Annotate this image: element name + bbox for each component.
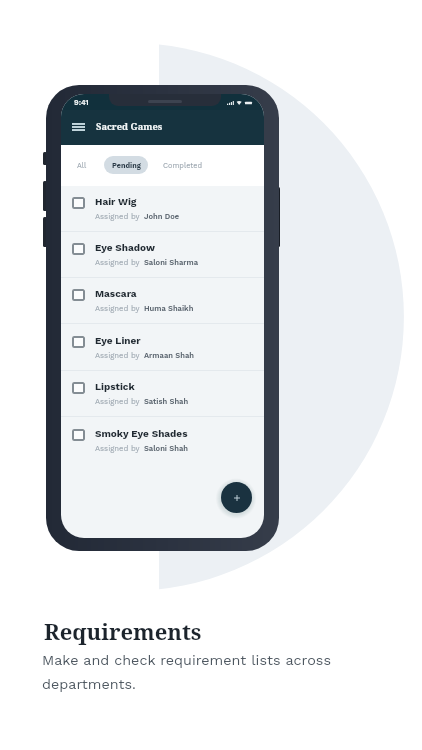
staticText: Smoky Eye Shades — [95, 428, 188, 440]
button[interactable]: Hair Wig — [61, 186, 264, 232]
staticText: Requirements — [44, 616, 202, 646]
staticText: Saloni Sharma — [144, 258, 199, 267]
staticText: 9:41 — [74, 98, 89, 107]
button[interactable]: Completed — [161, 150, 205, 180]
staticText: Eye Liner — [95, 335, 141, 347]
staticText: Sacred Games — [96, 120, 163, 133]
staticText: Pending — [112, 161, 141, 170]
button[interactable]: Add requirement — [221, 482, 252, 513]
staticText: All — [77, 161, 87, 170]
staticText: Saloni Shah — [144, 444, 188, 453]
staticText: Assigned by — [95, 351, 140, 360]
button[interactable]: Open navigation menu — [67, 118, 90, 136]
staticText: Armaan Shah — [144, 351, 194, 360]
button[interactable]: Pending — [104, 156, 148, 174]
staticText: Mascara — [95, 288, 137, 300]
staticText: John Doe — [144, 212, 180, 221]
staticText: Assigned by — [95, 444, 140, 453]
staticText: Satish Shah — [144, 397, 189, 406]
staticText: Make and check requirement lists across … — [42, 652, 331, 692]
button[interactable]: Lipstick — [61, 371, 264, 417]
staticText: Assigned by — [95, 212, 140, 221]
button[interactable]: Eye Shadow — [61, 232, 264, 278]
staticText: Assigned by — [95, 258, 140, 267]
staticText: Completed — [163, 161, 203, 170]
staticText: Hair Wig — [95, 196, 137, 208]
staticText: Assigned by — [95, 397, 140, 406]
staticText: Assigned by — [95, 304, 140, 313]
button[interactable]: Mascara — [61, 278, 264, 324]
staticText: Lipstick — [95, 381, 135, 393]
staticText: Huma Shaikh — [144, 304, 194, 313]
button[interactable]: Smoky Eye Shades — [61, 418, 264, 464]
staticText: Eye Shadow — [95, 242, 155, 254]
button[interactable]: All — [72, 150, 92, 180]
button[interactable]: Eye Liner — [61, 325, 264, 371]
